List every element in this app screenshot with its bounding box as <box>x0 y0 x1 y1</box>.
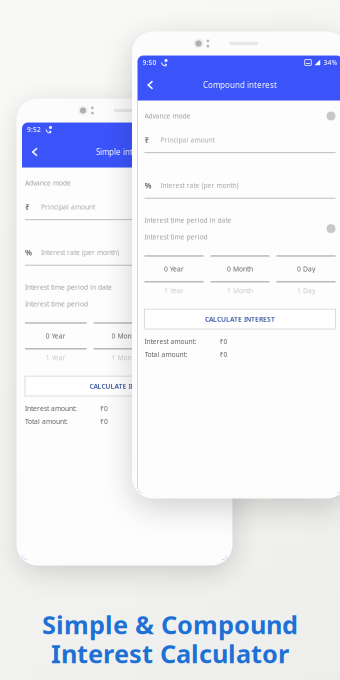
staticText: 0 Year <box>164 264 184 273</box>
staticText: Principal amount <box>160 135 214 144</box>
staticText: 1 Month <box>227 286 253 295</box>
staticText: % <box>144 180 151 191</box>
staticText: 9:50 <box>142 58 156 67</box>
button[interactable]: Back <box>137 69 163 100</box>
staticText: Compound interest <box>203 80 277 90</box>
staticText: 1 Day <box>297 286 315 295</box>
staticText: ₹ <box>25 201 30 212</box>
staticText: 9:52 <box>27 125 41 134</box>
staticText: CALCULATE INTEREST <box>89 382 159 391</box>
button[interactable]: Back <box>22 136 48 167</box>
button[interactable]: CALCULATE INTEREST <box>25 376 224 396</box>
staticText: Interest Calculator <box>51 637 289 670</box>
staticText: Total amount: <box>25 417 68 426</box>
staticText: Interest amount: <box>25 404 77 413</box>
button[interactable]: CALCULATE INTEREST <box>144 309 335 329</box>
staticText: Interest time period in date <box>144 216 231 225</box>
staticText: Principal amount <box>41 202 95 211</box>
staticText: 1 Month <box>111 353 137 362</box>
staticText: Simple interest <box>96 147 153 157</box>
staticText: 1 Day <box>184 353 202 362</box>
staticText: Total amount: <box>144 350 187 359</box>
staticText: CALCULATE INTEREST <box>205 315 275 324</box>
staticText: 1 Year <box>164 286 184 295</box>
staticText: 0 Year <box>46 331 66 340</box>
staticText: ₹0 <box>100 404 108 413</box>
staticText: 34% <box>323 58 337 67</box>
staticText: 0 Day <box>297 264 315 273</box>
staticText: Interest time period <box>25 300 88 308</box>
staticText: Simple & Compound <box>42 608 298 641</box>
staticText: 0 Day <box>184 331 202 340</box>
staticText: ₹ <box>144 134 149 145</box>
staticText: 0 Month <box>111 331 137 340</box>
staticText: ₹0 <box>100 417 108 426</box>
staticText: ₹0 <box>219 350 227 359</box>
staticText: Interest rate (per month) <box>41 248 119 257</box>
staticText: ₹0 <box>219 337 227 346</box>
staticText: Advance mode <box>144 112 190 120</box>
staticText: Interest time period <box>144 233 207 241</box>
staticText: Interest amount: <box>144 337 196 346</box>
staticText: Advance mode <box>25 179 71 187</box>
staticText: Interest time period in date <box>25 283 112 292</box>
staticText: 0 Month <box>227 264 253 273</box>
staticText: Interest rate (per month) <box>160 181 238 190</box>
staticText: % <box>25 247 32 258</box>
staticText: 1 Year <box>46 353 66 362</box>
